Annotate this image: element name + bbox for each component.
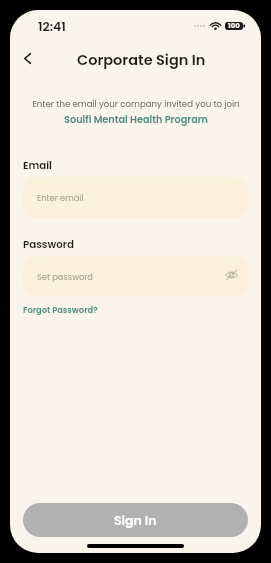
button[interactable]: Soulfi Mental Health Program bbox=[64, 113, 208, 127]
staticText: 100 bbox=[228, 21, 240, 31]
staticText: Corporate Sign In bbox=[77, 50, 206, 70]
button[interactable]: Forgot Password? bbox=[23, 304, 98, 316]
staticText: Set password bbox=[37, 271, 93, 283]
staticText: Enter email bbox=[37, 192, 84, 204]
button[interactable]: Set password bbox=[23, 256, 248, 297]
button[interactable]: Enter email bbox=[23, 177, 248, 218]
staticText: Email bbox=[23, 158, 52, 172]
button[interactable]: Sign In bbox=[23, 503, 248, 537]
button[interactable]: Show password bbox=[222, 266, 240, 284]
staticText: Sign In bbox=[114, 512, 157, 529]
staticText: Password bbox=[23, 237, 74, 251]
staticText: Enter the email your company invited you… bbox=[32, 98, 240, 110]
button[interactable]: Back bbox=[12, 43, 42, 73]
staticText: 12:41 bbox=[38, 18, 66, 35]
